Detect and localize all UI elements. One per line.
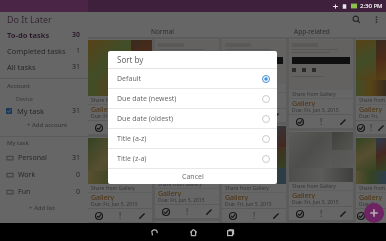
staticText: Gallery bbox=[158, 95, 182, 103]
button[interactable]: Priority bbox=[177, 205, 198, 218]
staticText: Share from Gallery bbox=[158, 181, 202, 188]
button[interactable]: Share from Gallery bbox=[155, 39, 219, 124]
button[interactable]: Complete bbox=[356, 209, 366, 222]
staticText: ! bbox=[370, 210, 373, 221]
button[interactable]: Priority bbox=[244, 209, 265, 222]
button[interactable]: Complete bbox=[289, 207, 311, 220]
staticText: 1 bbox=[76, 46, 81, 56]
button[interactable]: Complete bbox=[88, 209, 110, 222]
button[interactable]: Normal bbox=[88, 26, 237, 37]
button[interactable]: Priority bbox=[366, 209, 376, 222]
button[interactable]: Complete bbox=[155, 205, 177, 218]
staticText: ! bbox=[253, 210, 256, 221]
button[interactable]: Edit bbox=[332, 207, 353, 220]
button[interactable]: Share from Gallery bbox=[155, 127, 219, 218]
button[interactable]: Complete bbox=[222, 209, 244, 222]
button[interactable]: Share from Gallery bbox=[88, 39, 152, 134]
button[interactable]: More options bbox=[369, 12, 383, 26]
button[interactable]: Share from Gallery bbox=[155, 221, 219, 241]
staticText: Due: Fri, Jun 5, 2015 bbox=[225, 101, 272, 108]
button[interactable]: App-related bbox=[237, 26, 386, 37]
staticText: Share from Gallery bbox=[292, 91, 336, 98]
button[interactable]: Complete bbox=[88, 121, 110, 134]
button[interactable]: Share from Gallery bbox=[222, 225, 286, 241]
button[interactable]: Complete bbox=[289, 115, 311, 128]
button[interactable]: Fun bbox=[0, 183, 88, 200]
button[interactable]: Complete bbox=[356, 121, 366, 134]
staticText: Share from Gallery bbox=[225, 85, 269, 92]
button[interactable]: Edit bbox=[265, 209, 286, 222]
button[interactable]: Share from Gallery bbox=[356, 39, 386, 134]
button[interactable]: To-do tasks bbox=[0, 27, 88, 43]
button[interactable]: Edit bbox=[265, 109, 286, 122]
button[interactable]: Share from Gallery bbox=[222, 39, 286, 122]
button[interactable]: Default bbox=[108, 69, 277, 88]
staticText: Share from Gallery bbox=[91, 97, 135, 104]
staticText: Due: Fri, Jun 5, 2015 bbox=[225, 201, 272, 208]
staticText: Due: Fri, Jun 5, 2015 bbox=[91, 113, 138, 120]
staticText: Personal bbox=[18, 153, 47, 163]
staticText: ! bbox=[320, 116, 323, 127]
button[interactable]: Title (z-a) bbox=[108, 149, 277, 168]
button[interactable]: + Add account bbox=[0, 117, 88, 133]
button[interactable]: Cancel bbox=[108, 169, 277, 184]
button[interactable]: Due date (newest) bbox=[108, 89, 277, 108]
button[interactable]: Share from Gallery bbox=[289, 131, 353, 220]
staticText: 31 bbox=[72, 62, 81, 72]
button[interactable]: Search bbox=[349, 12, 363, 26]
button[interactable]: Priority bbox=[244, 109, 265, 122]
button[interactable]: Priority bbox=[366, 121, 376, 134]
staticText: Do It Later bbox=[7, 13, 52, 25]
button[interactable]: Work bbox=[0, 166, 88, 183]
staticText: Gallery bbox=[359, 193, 383, 201]
staticText: ! bbox=[119, 122, 122, 133]
staticText: App-related bbox=[294, 27, 330, 36]
button[interactable]: Share from Gallery bbox=[356, 137, 386, 222]
staticText: Work bbox=[18, 170, 36, 180]
button[interactable]: Share from Gallery bbox=[222, 125, 286, 222]
staticText: ! bbox=[119, 210, 122, 221]
staticText: My task bbox=[7, 139, 29, 147]
button[interactable]: Add task bbox=[364, 203, 384, 223]
button[interactable]: Priority bbox=[311, 207, 332, 220]
button[interactable]: Home bbox=[186, 225, 200, 239]
button[interactable]: Recents bbox=[223, 225, 237, 239]
button[interactable]: Priority bbox=[110, 209, 131, 222]
button[interactable]: Title (a-z) bbox=[108, 129, 277, 148]
button[interactable]: Share from Gallery bbox=[88, 137, 152, 222]
button[interactable]: Edit bbox=[376, 209, 386, 222]
button[interactable]: Personal bbox=[0, 149, 88, 166]
button[interactable]: Share from Gallery bbox=[88, 225, 152, 241]
button[interactable]: Priority bbox=[311, 115, 332, 128]
staticText: Gallery bbox=[292, 99, 316, 107]
button[interactable]: Share from Gallery bbox=[289, 39, 353, 128]
button[interactable]: Priority bbox=[110, 121, 131, 134]
button[interactable]: Back bbox=[147, 225, 161, 239]
button[interactable]: Edit bbox=[131, 209, 152, 222]
button[interactable]: Edit bbox=[332, 115, 353, 128]
staticText: Due: Fri, Jun 5, 2015 bbox=[359, 201, 386, 208]
button[interactable]: Edit bbox=[131, 121, 152, 134]
staticText: Device bbox=[16, 95, 33, 102]
staticText: ! bbox=[320, 208, 323, 219]
staticText: Normal bbox=[151, 27, 174, 36]
button[interactable]: My task bbox=[0, 104, 88, 117]
button[interactable]: Edit bbox=[376, 121, 386, 134]
button[interactable]: Complete bbox=[155, 111, 177, 124]
button[interactable]: + Add list bbox=[0, 200, 88, 216]
button[interactable]: All tasks bbox=[0, 59, 88, 75]
button[interactable]: Edit bbox=[198, 205, 219, 218]
button[interactable]: Due date (oldest) bbox=[108, 109, 277, 128]
staticText: 31 bbox=[72, 153, 81, 163]
button[interactable]: Completed tasks bbox=[0, 43, 88, 59]
staticText: Gallery bbox=[91, 105, 115, 113]
staticText: Due: Fri, Jun 5, 2015 bbox=[292, 199, 339, 206]
